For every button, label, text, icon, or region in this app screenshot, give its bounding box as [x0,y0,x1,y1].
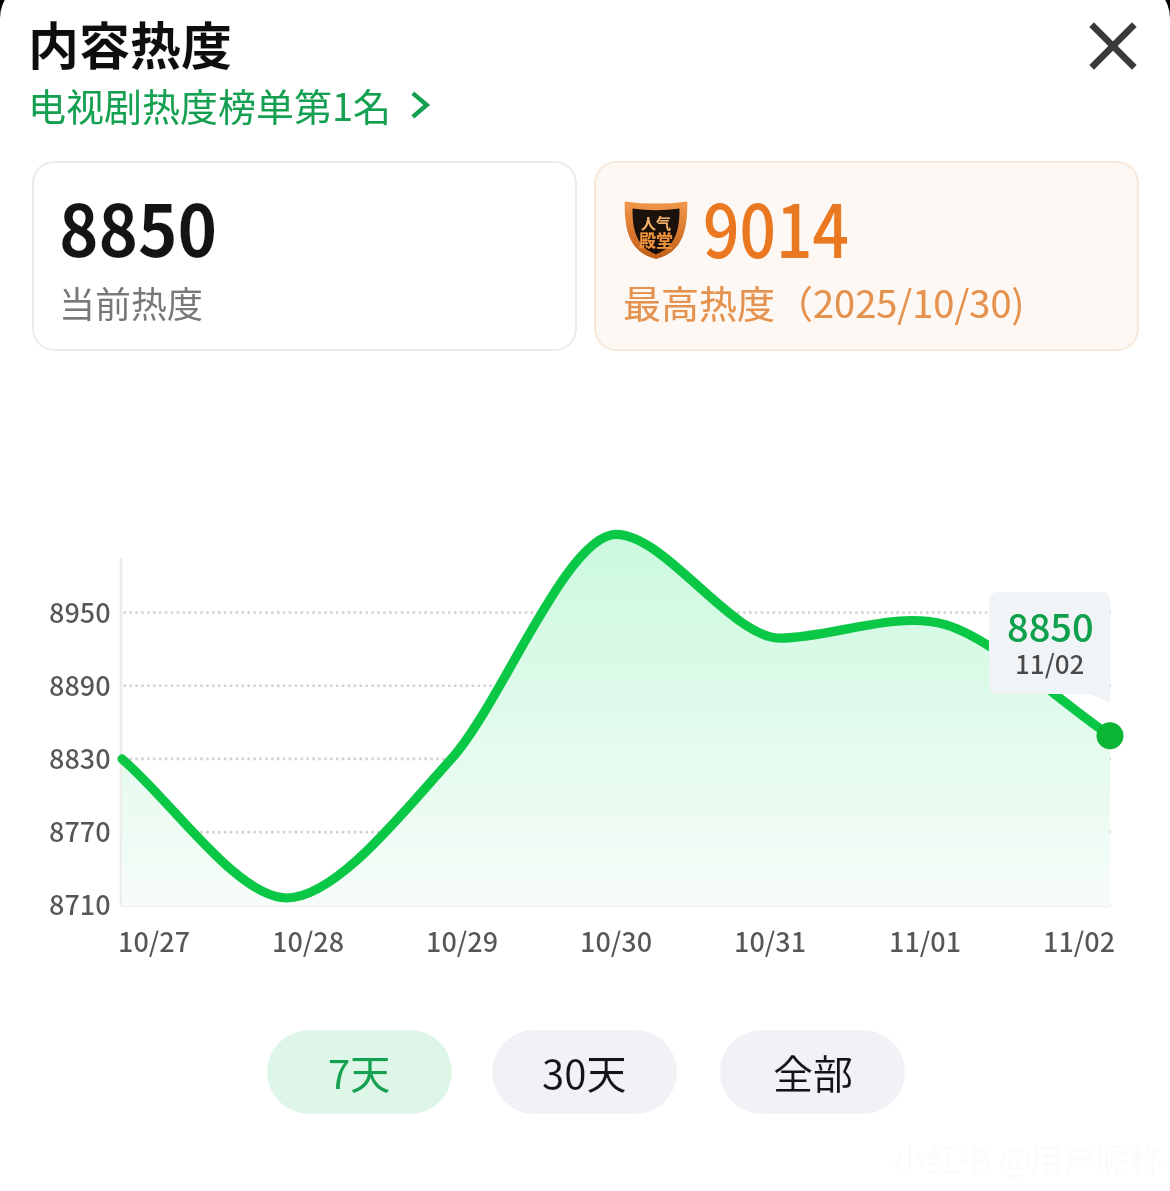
staticText: 8850 [1007,598,1094,653]
staticText: 30天 [542,1043,627,1101]
button[interactable]: Close [1071,4,1155,88]
staticText: 内容热度 [28,6,233,80]
staticText: 8710 [49,884,111,923]
staticText: 当前热度 [59,276,204,328]
staticText: 11/01 [889,921,962,960]
staticText: 8770 [49,811,111,850]
staticText: 电视剧热度榜单第1名 [28,77,392,132]
staticText: 8850 [59,174,218,277]
staticText: 7天 [328,1043,391,1101]
staticText: 10/28 [272,921,345,960]
staticText: 全部 [773,1043,853,1101]
staticText: 8830 [49,738,111,777]
button[interactable]: 7天 [267,1030,452,1114]
staticText: 10/29 [426,921,499,960]
button[interactable]: 30天 [492,1030,677,1114]
button[interactable]: 全部 [720,1030,905,1114]
staticText: 11/02 [1043,921,1116,960]
staticText: 最高热度（2025/10/30) [623,274,1025,329]
staticText: 8950 [49,592,111,631]
staticText: 人气 [641,212,672,234]
staticText: 10/30 [580,921,653,960]
staticText: 殿堂 [639,227,673,252]
button[interactable]: 人气 [594,161,1139,351]
staticText: 9014 [703,174,849,280]
staticText: 10/31 [734,921,807,960]
button[interactable]: 电视剧热度榜单第1名 [28,77,440,132]
staticText: 10/27 [118,921,191,960]
button[interactable]: 8850 [32,161,577,351]
staticText: 11/02 [1015,644,1085,682]
staticText: 8890 [49,665,111,704]
